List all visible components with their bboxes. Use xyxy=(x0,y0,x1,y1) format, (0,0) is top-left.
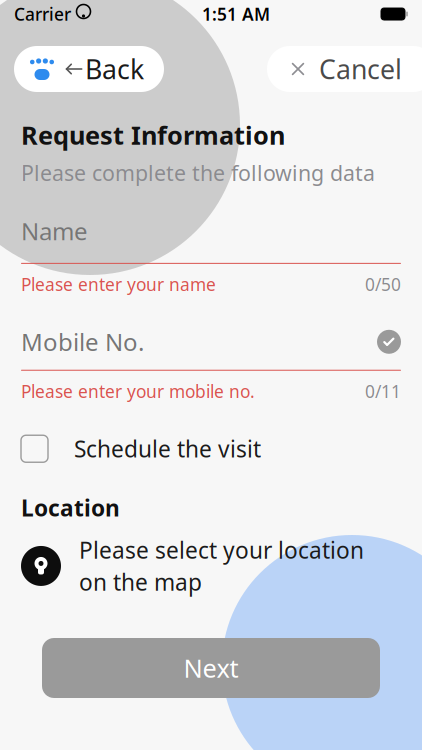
staticText: Please enter your mobile no. xyxy=(21,380,255,403)
staticText: Request Information xyxy=(21,118,285,152)
staticText: Schedule the visit xyxy=(74,434,261,464)
button[interactable]: Next xyxy=(42,638,380,698)
staticText: Please select your location xyxy=(79,535,364,565)
staticText: 1:51 AM xyxy=(202,2,270,25)
staticText: Please enter your name xyxy=(21,273,216,296)
staticText: Location xyxy=(21,493,120,523)
button[interactable]: Please select your location xyxy=(0,523,422,597)
staticText: Next xyxy=(183,651,238,685)
staticText: Please complete the following data xyxy=(21,159,375,187)
staticText xyxy=(71,2,76,25)
button[interactable]: Cancel xyxy=(267,46,422,92)
staticText: Cancel xyxy=(319,51,402,87)
staticText: Carrier xyxy=(14,2,71,25)
staticText: on the map xyxy=(79,567,202,597)
button[interactable]: Back xyxy=(14,46,164,92)
staticText: Mobile No. xyxy=(21,326,144,358)
staticText: 0/50 xyxy=(365,273,401,296)
staticText: Back xyxy=(85,51,144,87)
staticText: Name xyxy=(21,215,88,247)
button[interactable]: Schedule the visit xyxy=(0,427,422,471)
staticText: 0/11 xyxy=(365,380,401,403)
